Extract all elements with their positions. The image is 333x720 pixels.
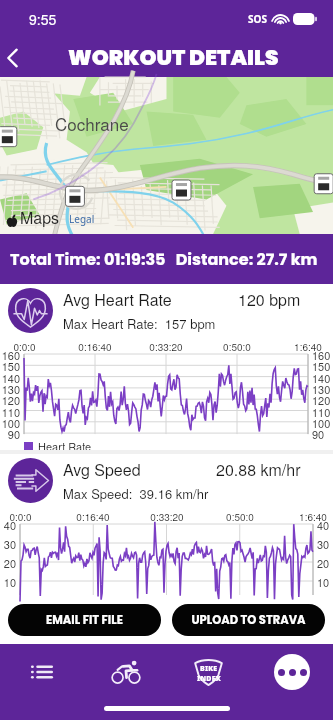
staticText: 10 <box>3 574 16 590</box>
staticText: Maps <box>20 206 60 229</box>
staticText: Total Time: 01:19:35 Distance: 27.7 km <box>10 248 318 270</box>
staticText: 140 <box>312 370 331 386</box>
staticText: BIKE <box>200 664 218 674</box>
staticText: 0:0:0 <box>13 340 36 354</box>
button[interactable]: UPLOAD TO STRAVA <box>172 604 325 636</box>
staticText: 110 <box>312 404 331 420</box>
button[interactable]: Avg Speed <box>8 458 53 503</box>
staticText: UPLOAD TO STRAVA <box>191 612 306 628</box>
staticText: 0:16:40 <box>76 510 110 524</box>
staticText: 1:6:40 <box>294 340 322 354</box>
staticText: 90 <box>7 426 20 442</box>
staticText: 0:0:0 <box>9 510 32 524</box>
button[interactable]: Ride <box>84 644 167 700</box>
staticText: 130 <box>1 381 20 397</box>
staticText: 20 <box>317 555 330 571</box>
staticText: 90 <box>312 426 325 442</box>
staticText: 0:16:40 <box>78 340 112 354</box>
staticText: SOS <box>248 12 267 26</box>
button[interactable]: Activity list <box>0 644 84 700</box>
staticText: 120 <box>1 392 20 408</box>
button[interactable]: More <box>274 654 310 690</box>
staticText: 0:50:0 <box>223 340 251 354</box>
staticText: 40 <box>3 517 16 533</box>
staticText: 20.88 km/hr <box>216 458 301 481</box>
button[interactable]: Bike Index <box>167 644 250 700</box>
staticText: Max Speed: 39.16 km/hr <box>63 484 209 503</box>
button[interactable]: EMAIL FIT FILE <box>8 604 161 636</box>
staticText: INDEX <box>197 674 221 684</box>
staticText: 130 <box>312 381 331 397</box>
staticText: 150 <box>1 358 20 374</box>
staticText: 40 <box>317 517 330 533</box>
button[interactable]: Back <box>0 41 29 75</box>
staticText: 0:33:20 <box>150 510 184 524</box>
staticText: 100 <box>312 415 331 431</box>
staticText: 140 <box>1 370 20 386</box>
staticText: 150 <box>312 358 331 374</box>
staticText: 30 <box>3 536 16 552</box>
staticText: Cochrane <box>55 111 129 135</box>
staticText: 1:6:40 <box>299 510 327 524</box>
staticText: 0:50:0 <box>226 510 254 524</box>
staticText: 30 <box>317 536 330 552</box>
staticText: 160 <box>312 347 331 363</box>
staticText: 160 <box>1 347 20 363</box>
staticText: 20 <box>3 555 16 571</box>
staticText: 10 <box>317 574 330 590</box>
staticText: Heart Rate <box>38 438 92 454</box>
staticText: 9:55 <box>29 9 57 29</box>
staticText: Max Heart Rate: 157 bpm <box>63 314 216 333</box>
button[interactable]: Avg Heart Rate <box>8 288 53 333</box>
staticText: 120 bpm <box>238 288 301 311</box>
staticText: EMAIL FIT FILE <box>46 612 123 628</box>
staticText: Legal <box>69 212 95 226</box>
staticText: 0:33:20 <box>149 340 183 354</box>
staticText: 120 <box>312 392 331 408</box>
staticText: 110 <box>1 404 20 420</box>
staticText: 100 <box>1 415 20 431</box>
staticText: WORKOUT DETAILS <box>68 42 279 72</box>
staticText: Avg Speed <box>63 458 141 481</box>
staticText: Avg Heart Rate <box>63 288 172 311</box>
